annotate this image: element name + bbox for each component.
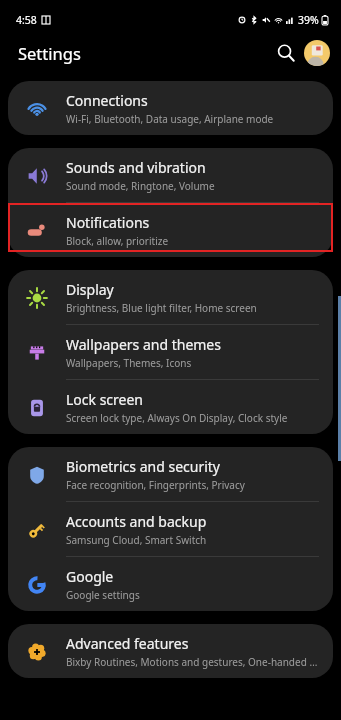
button[interactable]: Biometrics and security [8,447,333,501]
button[interactable]: Google [8,557,333,611]
button[interactable]: Sounds and vibration [8,148,333,202]
staticText: Notifications [66,213,150,232]
staticText: Settings [18,42,81,64]
staticText: Screen lock type, Always On Display, Clo… [66,411,288,425]
staticText: Sounds and vibration [66,158,206,177]
button[interactable]: Wallpapers and themes [8,325,333,379]
staticText: Block, allow, prioritize [66,234,169,248]
staticText: Biometrics and security [66,457,220,476]
staticText: Accounts and backup [66,512,207,531]
staticText: Brightness, Blue light filter, Home scre… [66,301,257,315]
staticText: Lock screen [66,390,144,409]
staticText: Wallpapers and themes [66,335,221,354]
staticText: Google [66,567,114,586]
staticText: Face recognition, Fingerprints, Privacy [66,478,245,492]
staticText: Wallpapers, Themes, Icons [66,356,192,370]
button[interactable]: Advanced features [8,624,333,678]
staticText: Sound mode, Ringtone, Volume [66,179,215,193]
button[interactable]: Accounts and backup [8,502,333,556]
staticText: Bixby Routines, Motions and gestures, On… [66,655,321,669]
staticText: Wi-Fi, Bluetooth, Data usage, Airplane m… [66,112,274,126]
staticText: 39% [298,13,319,27]
staticText: Samsung Cloud, Smart Switch [66,533,207,547]
staticText: Display [66,280,114,299]
staticText: Connections [66,91,148,110]
button[interactable]: Display [8,270,333,324]
button[interactable]: Search [270,37,302,69]
button[interactable]: Notifications [8,203,333,257]
button[interactable]: Lock screen [8,380,333,434]
staticText: Advanced features [66,634,189,653]
button[interactable]: Account [304,40,330,66]
staticText: Google settings [66,588,140,602]
button[interactable]: Connections [8,81,333,135]
staticText: 4:58 [16,13,37,27]
